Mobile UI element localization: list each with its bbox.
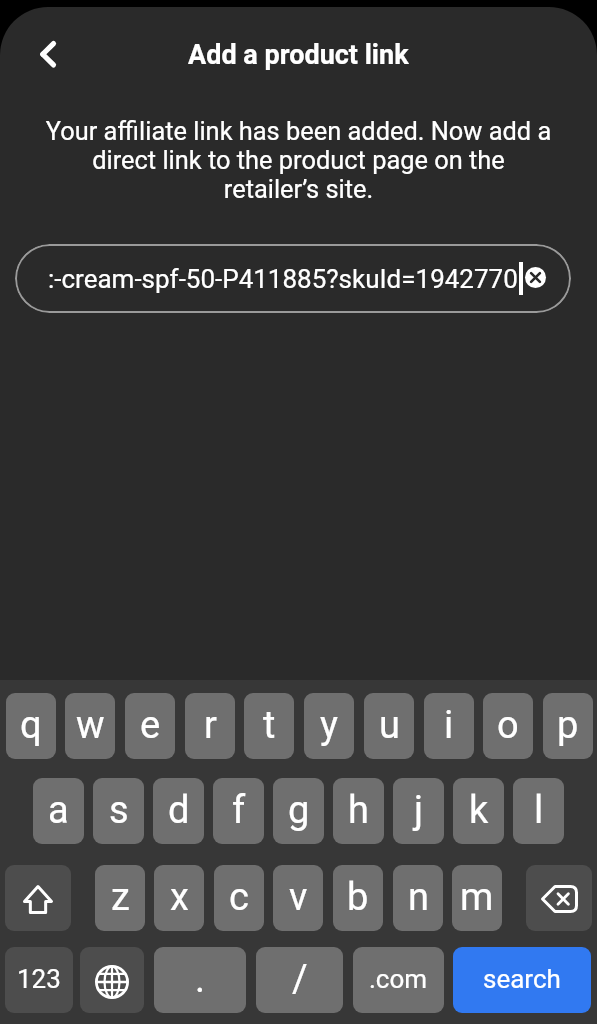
staticText: p	[557, 703, 579, 748]
button[interactable]: s	[93, 778, 144, 844]
button[interactable]: 123	[5, 947, 73, 1013]
button[interactable]: u	[364, 693, 414, 759]
button[interactable]: x	[154, 865, 204, 931]
staticText: /	[292, 957, 308, 1002]
staticText: k	[469, 788, 489, 833]
button[interactable]: z	[95, 865, 145, 931]
button[interactable]: /	[256, 947, 343, 1013]
button[interactable]: w	[65, 693, 115, 759]
button[interactable]: m	[452, 865, 502, 931]
staticText: d	[168, 788, 190, 833]
staticText: Add a product link	[188, 39, 409, 71]
button[interactable]: :-cream-spf-50-P411885?skuId=1942770	[15, 244, 571, 313]
staticText: c	[229, 875, 249, 920]
staticText: y	[320, 703, 338, 748]
staticText: Your affiliate link has been added. Now …	[29, 116, 568, 204]
staticText: .com	[369, 964, 428, 994]
staticText: 123	[17, 964, 61, 994]
button[interactable]: .com	[353, 947, 444, 1013]
button[interactable]: Back	[26, 40, 70, 84]
staticText: z	[111, 875, 130, 920]
button[interactable]: l	[513, 778, 564, 844]
staticText: :-cream-spf-50-P411885?skuId=1942770	[48, 264, 518, 294]
staticText: search	[483, 964, 561, 994]
button[interactable]: v	[273, 865, 323, 931]
staticText: t	[263, 703, 276, 748]
staticText: s	[109, 788, 129, 833]
staticText: h	[348, 788, 369, 833]
button[interactable]: f	[213, 778, 264, 844]
button[interactable]: .	[154, 947, 246, 1013]
staticText: j	[414, 788, 424, 833]
staticText: e	[140, 703, 161, 748]
button[interactable]: j	[393, 778, 444, 844]
button[interactable]: search	[453, 947, 591, 1013]
staticText: i	[444, 703, 454, 748]
button[interactable]: n	[393, 865, 443, 931]
staticText: g	[288, 788, 310, 833]
button[interactable]: Backspace	[526, 865, 592, 931]
button[interactable]: k	[453, 778, 504, 844]
button[interactable]: g	[273, 778, 324, 844]
button[interactable]: p	[543, 693, 593, 759]
staticText: .	[195, 957, 206, 1002]
button[interactable]: Change keyboard language	[80, 947, 144, 1013]
button[interactable]: d	[153, 778, 204, 844]
staticText: n	[408, 875, 429, 920]
button[interactable]: Shift	[5, 865, 71, 931]
button[interactable]: h	[333, 778, 384, 844]
staticText: r	[204, 703, 217, 748]
staticText: l	[534, 788, 544, 833]
staticText: v	[289, 875, 308, 920]
staticText: a	[48, 788, 69, 833]
button[interactable]: q	[6, 693, 56, 759]
staticText: u	[379, 703, 400, 748]
staticText: w	[76, 703, 105, 748]
button[interactable]: o	[483, 693, 533, 759]
button[interactable]: t	[244, 693, 294, 759]
button[interactable]: y	[304, 693, 354, 759]
staticText: b	[347, 875, 369, 920]
button[interactable]: e	[125, 693, 175, 759]
button[interactable]: a	[33, 778, 84, 844]
staticText: f	[232, 788, 246, 833]
button[interactable]: i	[424, 693, 474, 759]
staticText: x	[170, 875, 189, 920]
button[interactable]: c	[214, 865, 264, 931]
staticText: q	[20, 703, 42, 748]
staticText: m	[460, 875, 494, 920]
staticText: o	[497, 703, 519, 748]
button[interactable]: r	[185, 693, 235, 759]
button[interactable]: b	[333, 865, 383, 931]
button[interactable]: Clear text	[525, 267, 546, 290]
